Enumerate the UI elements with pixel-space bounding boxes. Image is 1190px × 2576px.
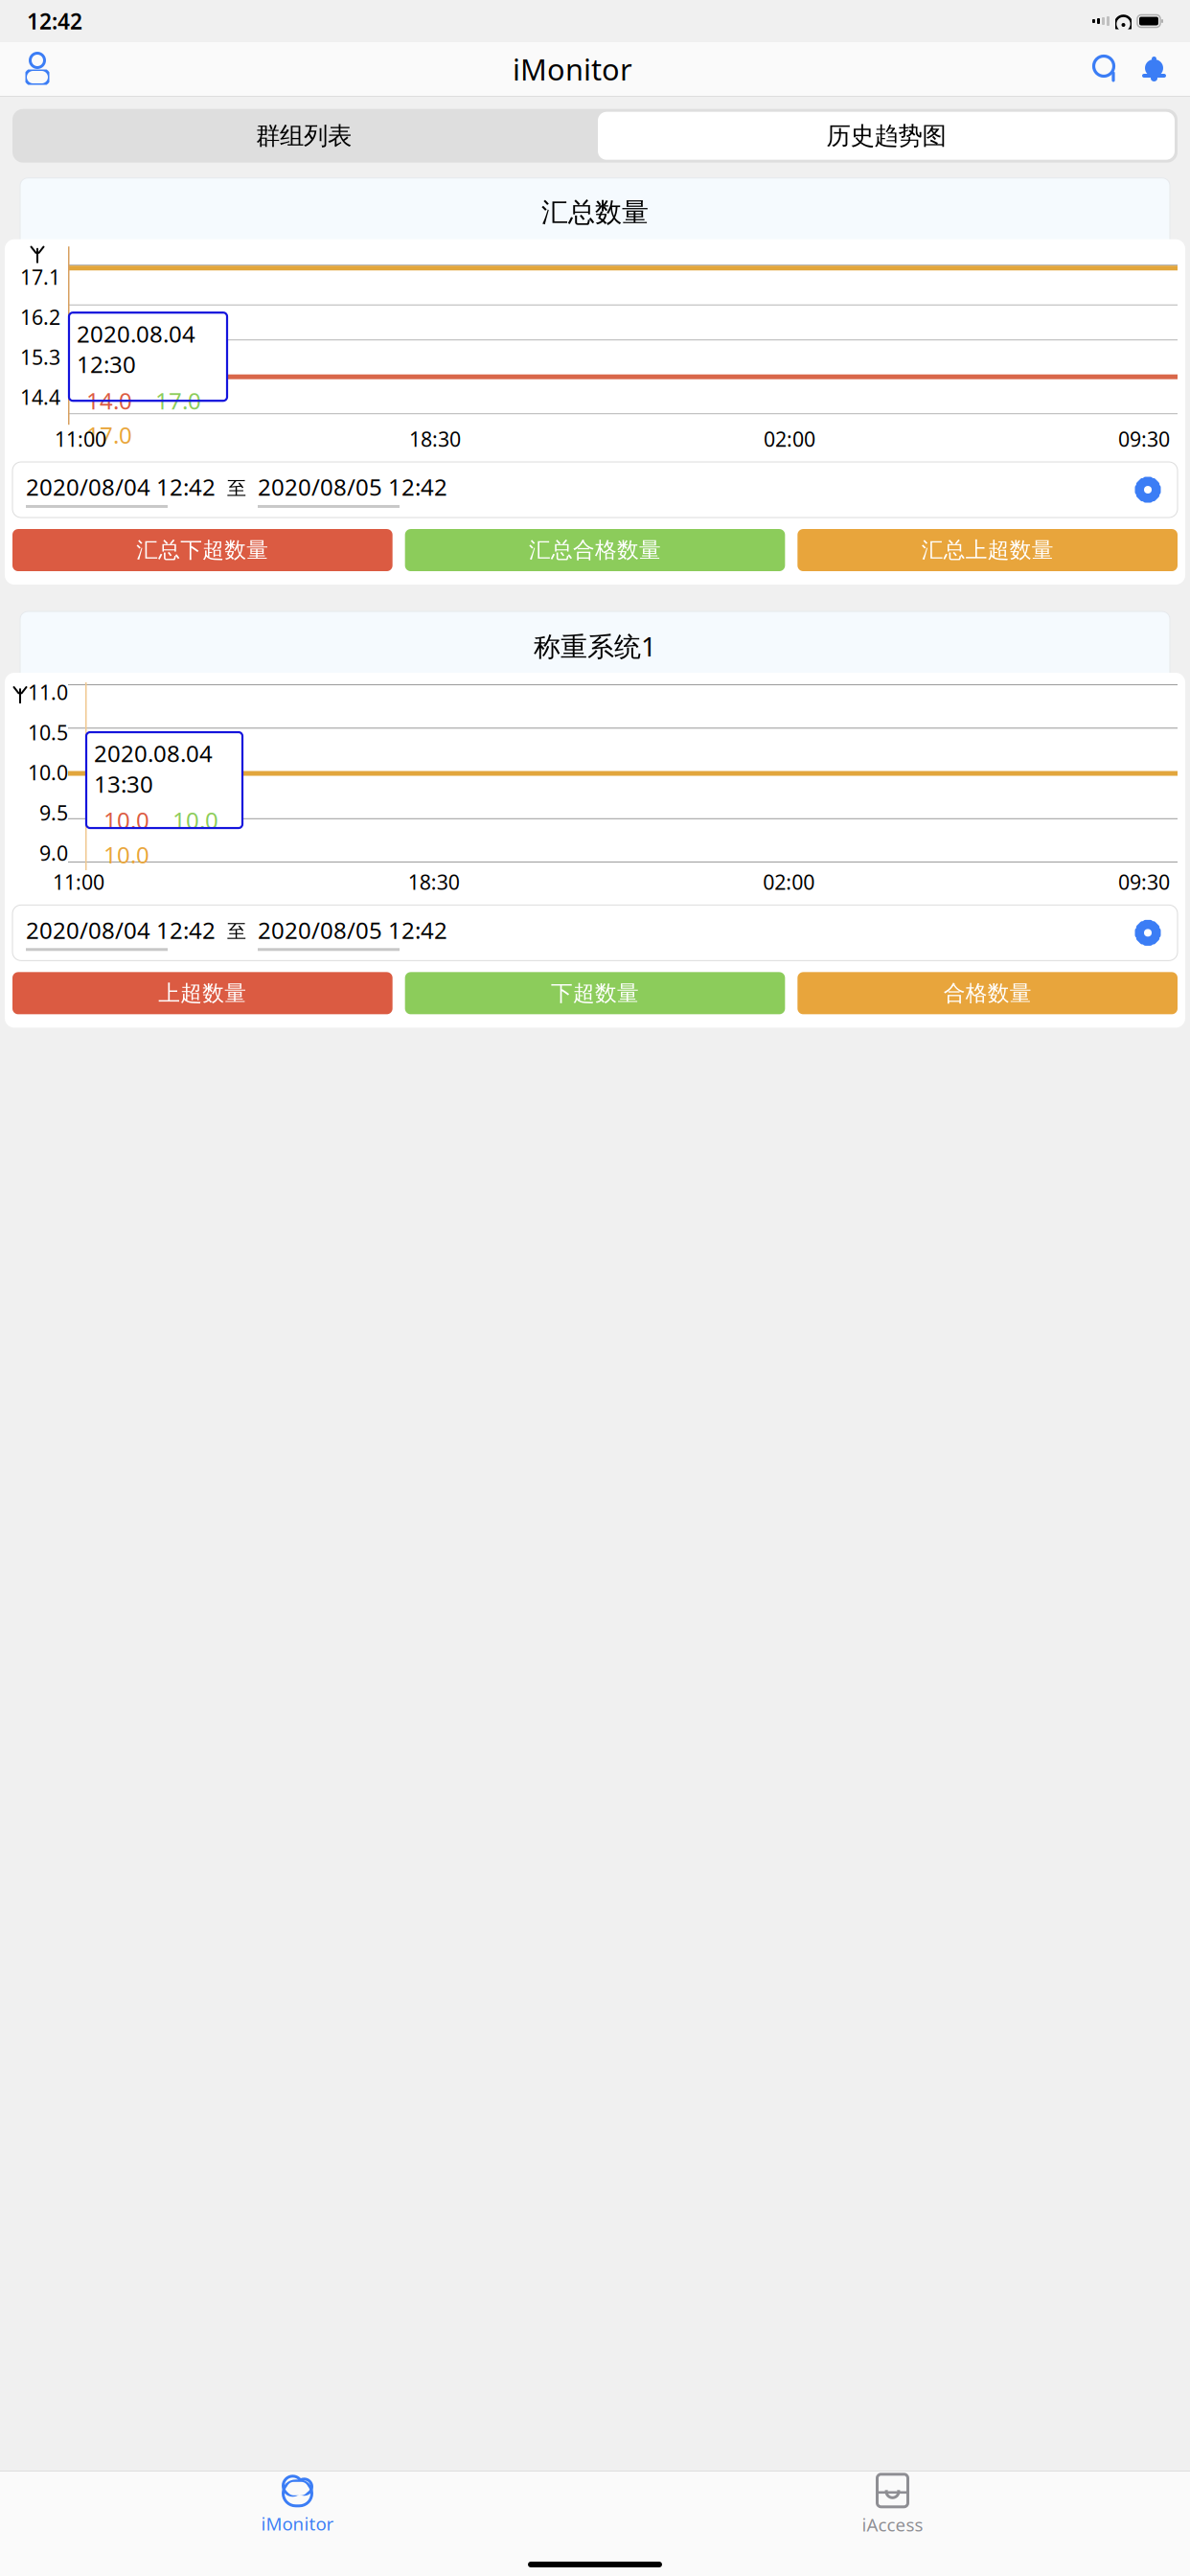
staticText: 历史趋势图 [826,121,946,151]
staticText: 10.0 [28,759,68,786]
button[interactable]: Notifications [1130,49,1179,89]
button[interactable]: 2020/08/04 12:42 [22,915,216,951]
button[interactable]: 下超数量 [405,972,785,1014]
staticText: 至 [227,920,246,943]
button[interactable]: Search [1082,49,1130,89]
staticText: 18:30 [409,425,461,452]
button[interactable]: 汇总上超数量 [797,529,1178,571]
button[interactable]: Settings [1133,918,1168,947]
staticText: 18:30 [408,868,460,895]
staticText: 02:00 [764,425,815,452]
button[interactable]: Settings [1133,475,1168,504]
staticText: 10.0 [172,805,218,835]
staticText: 2020/08/05 12:42 [258,472,447,502]
button[interactable]: 2020/08/05 12:42 [258,472,447,508]
staticText: 11:00 [55,425,106,452]
button[interactable]: 上超数量 [12,972,393,1014]
staticText: 11.0 [28,678,68,706]
staticText: iMonitor [261,2512,334,2535]
staticText: 11:00 [53,868,104,895]
staticText: 10.5 [28,719,68,746]
staticText: 汇总下超数量 [136,537,269,563]
staticText: 合格数量 [943,980,1032,1006]
staticText: 9.5 [39,799,68,826]
staticText: 14.4 [20,383,60,410]
staticText: 群组列表 [256,121,352,151]
staticText: 2020/08/04 12:42 [26,472,216,502]
staticText: 17.1 [20,263,60,290]
staticText: 至 [227,476,246,500]
staticText: 10.0 [103,839,149,870]
staticText: 02:00 [763,868,815,895]
staticText: iMonitor [513,49,632,88]
staticText: 15.3 [20,343,60,370]
staticText: 2020.08.04 13:30 [94,738,213,799]
staticText: 09:30 [1118,868,1170,895]
staticText: 09:30 [1118,425,1170,452]
staticText: 16.2 [20,303,60,330]
staticText: 称重系统1 [534,628,656,664]
staticText: 17.0 [86,420,132,450]
staticText: 上超数量 [158,980,247,1006]
staticText: 17.0 [155,385,201,416]
staticText: iAccess [862,2513,923,2536]
staticText: 9.0 [39,839,68,866]
staticText: 2020.08.04 12:30 [77,318,195,379]
button[interactable]: 合格数量 [797,972,1178,1014]
staticText: 10.0 [103,805,149,835]
button[interactable]: 汇总合格数量 [405,529,785,571]
staticText: 2020/08/04 12:42 [26,915,216,945]
staticText: 汇总上超数量 [921,537,1054,563]
staticText: 汇总合格数量 [529,537,661,563]
button[interactable]: 汇总下超数量 [12,529,393,571]
staticText: 2020/08/05 12:42 [258,915,447,945]
staticText: 下超数量 [551,980,639,1006]
button[interactable]: Account [11,47,63,91]
button[interactable]: iMonitor [0,2467,595,2535]
button[interactable]: iAccess [595,2466,1190,2536]
button[interactable]: 2020/08/04 12:42 [22,472,216,508]
button[interactable]: 历史趋势图 [595,109,1178,163]
staticText: 汇总数量 [541,196,649,229]
staticText: 12:42 [27,7,82,35]
staticText: 14.0 [86,385,132,416]
button[interactable]: 群组列表 [12,112,595,160]
button[interactable]: 2020/08/05 12:42 [258,915,447,951]
